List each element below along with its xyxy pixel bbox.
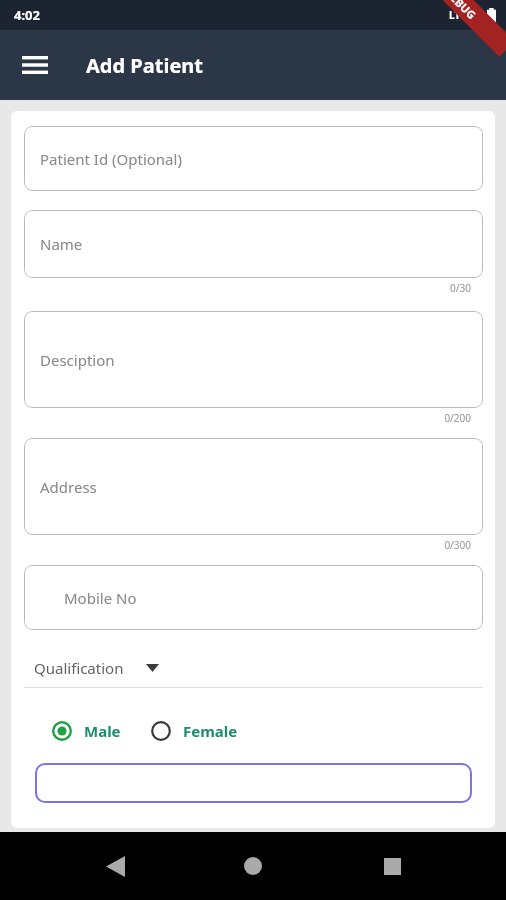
button[interactable]: Female <box>151 721 246 741</box>
button[interactable]: Desciption <box>24 311 483 408</box>
staticText: Add Patient <box>86 52 203 79</box>
staticText: 0/200 <box>24 411 471 425</box>
staticText: Address <box>40 477 97 497</box>
staticText: 4:02 <box>14 6 40 24</box>
button[interactable]: Open navigation menu <box>14 44 56 86</box>
button[interactable]: Mobile No <box>24 565 483 630</box>
staticText: Mobile No <box>64 588 137 608</box>
button[interactable]: Male <box>24 721 129 741</box>
staticText: Patient Id (Optional) <box>40 149 182 169</box>
staticText: DEBUG <box>442 0 479 22</box>
staticText: Male <box>84 721 121 741</box>
staticText: Qualification <box>34 658 124 678</box>
button[interactable]: Home <box>229 842 277 890</box>
button[interactable]: Recent apps <box>368 842 416 890</box>
button[interactable]: Patient Id (Optional) <box>24 126 483 191</box>
staticText: Name <box>40 234 83 254</box>
staticText: LTE <box>449 8 466 22</box>
staticText: Female <box>183 721 238 741</box>
staticText: 0/30 <box>24 281 471 295</box>
button[interactable]: Name <box>24 210 483 278</box>
button[interactable] <box>35 763 472 803</box>
staticText: 0/300 <box>24 538 471 552</box>
button[interactable]: Back <box>91 842 139 890</box>
button[interactable]: Qualification <box>24 655 483 688</box>
staticText: Desciption <box>40 350 115 370</box>
button[interactable]: Address <box>24 438 483 535</box>
